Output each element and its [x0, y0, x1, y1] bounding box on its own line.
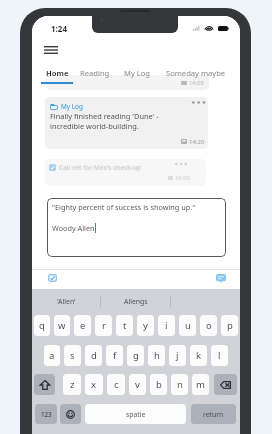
button[interactable]: n: [171, 374, 188, 395]
staticText: v: [135, 378, 140, 391]
staticText: n: [177, 378, 183, 391]
staticText: My Log: [124, 68, 150, 78]
staticText: b: [156, 378, 162, 391]
staticText: Woody Allen: [52, 223, 95, 233]
staticText: k: [196, 349, 202, 362]
button[interactable]: Allengs: [101, 289, 170, 313]
button[interactable]: "Eighty percent of success is showing up…: [47, 198, 226, 257]
button[interactable]: u: [179, 315, 196, 336]
staticText: i: [165, 319, 168, 332]
staticText: 1:24: [51, 23, 67, 34]
staticText: x: [91, 378, 97, 391]
staticText: t: [123, 319, 127, 332]
button[interactable]: k: [190, 345, 207, 366]
button[interactable]: Someday maybe: [165, 68, 226, 84]
staticText: 16:00: [175, 174, 190, 182]
staticText: Someday maybe: [166, 68, 226, 78]
staticText: s: [70, 349, 75, 362]
button[interactable]: y: [137, 315, 154, 336]
button[interactable]: q: [34, 315, 50, 336]
staticText: z: [70, 378, 75, 391]
staticText: j: [176, 349, 179, 362]
staticText: 14:20: [189, 137, 205, 145]
button[interactable]: Home: [41, 68, 73, 84]
button[interactable]: spatie: [85, 404, 186, 424]
button[interactable]: My Log: [45, 97, 208, 149]
button[interactable]: Shift: [34, 374, 55, 395]
button[interactable]: o: [200, 315, 217, 336]
button[interactable]: New task: [41, 268, 63, 288]
button[interactable]: 123: [35, 404, 57, 424]
staticText: w: [58, 319, 66, 332]
staticText: Finally finished reading 'Dune' - incred…: [50, 111, 159, 131]
staticText: 123: [41, 410, 52, 418]
staticText: g: [133, 349, 139, 362]
staticText: o: [206, 319, 212, 332]
button[interactable]: a: [44, 345, 60, 366]
button[interactable]: My Log: [122, 68, 152, 84]
button[interactable]: p: [221, 315, 238, 336]
button[interactable]: j: [169, 345, 186, 366]
staticText: 14:05: [189, 79, 204, 87]
button[interactable]: New note: [210, 268, 232, 288]
staticText: u: [185, 319, 191, 332]
button[interactable]: d: [85, 345, 102, 366]
button[interactable]: x: [85, 374, 103, 395]
staticText: m: [196, 378, 205, 391]
button[interactable]: Reading: [80, 68, 110, 84]
button[interactable]: i: [158, 315, 175, 336]
staticText: Reading: [80, 68, 110, 78]
staticText: a: [49, 349, 55, 362]
button[interactable]: b: [150, 374, 167, 395]
button[interactable]: v: [129, 374, 146, 395]
button[interactable]: l: [211, 345, 228, 366]
staticText: h: [154, 349, 160, 362]
button[interactable]: Call vet for Max's check-up: [45, 159, 206, 186]
staticText: Home: [46, 68, 69, 78]
staticText: Call vet for Max's check-up: [59, 163, 142, 172]
button[interactable]: 'Allen': [32, 289, 100, 313]
staticText: f: [113, 349, 117, 362]
staticText: e: [80, 319, 86, 332]
staticText: p: [227, 319, 233, 332]
staticText: return: [203, 410, 224, 419]
staticText: spatie: [126, 410, 146, 419]
button[interactable]: r: [95, 315, 112, 336]
button[interactable]: Menu: [40, 42, 62, 58]
button[interactable]: Backspace: [214, 374, 237, 395]
button[interactable]: w: [54, 315, 70, 336]
staticText: r: [102, 319, 106, 332]
staticText: q: [39, 319, 45, 332]
button[interactable]: c: [107, 374, 125, 395]
staticText: 'Allen': [57, 297, 76, 306]
button[interactable]: h: [148, 345, 165, 366]
button[interactable]: Emoji: [60, 404, 81, 424]
staticText: y: [143, 319, 148, 332]
staticText: c: [114, 378, 119, 391]
staticText: l: [218, 349, 221, 362]
staticText: My Log: [61, 102, 83, 111]
staticText: Allengs: [124, 297, 148, 306]
button[interactable]: g: [127, 345, 144, 366]
button[interactable]: s: [64, 345, 81, 366]
button[interactable]: f: [106, 345, 123, 366]
button[interactable]: z: [63, 374, 81, 395]
button[interactable]: t: [116, 315, 133, 336]
button[interactable]: m: [192, 374, 209, 395]
button[interactable]: e: [74, 315, 91, 336]
staticText: "Eighty percent of success is showing up…: [52, 202, 196, 212]
button[interactable]: return: [191, 404, 236, 424]
staticText: d: [91, 349, 97, 362]
